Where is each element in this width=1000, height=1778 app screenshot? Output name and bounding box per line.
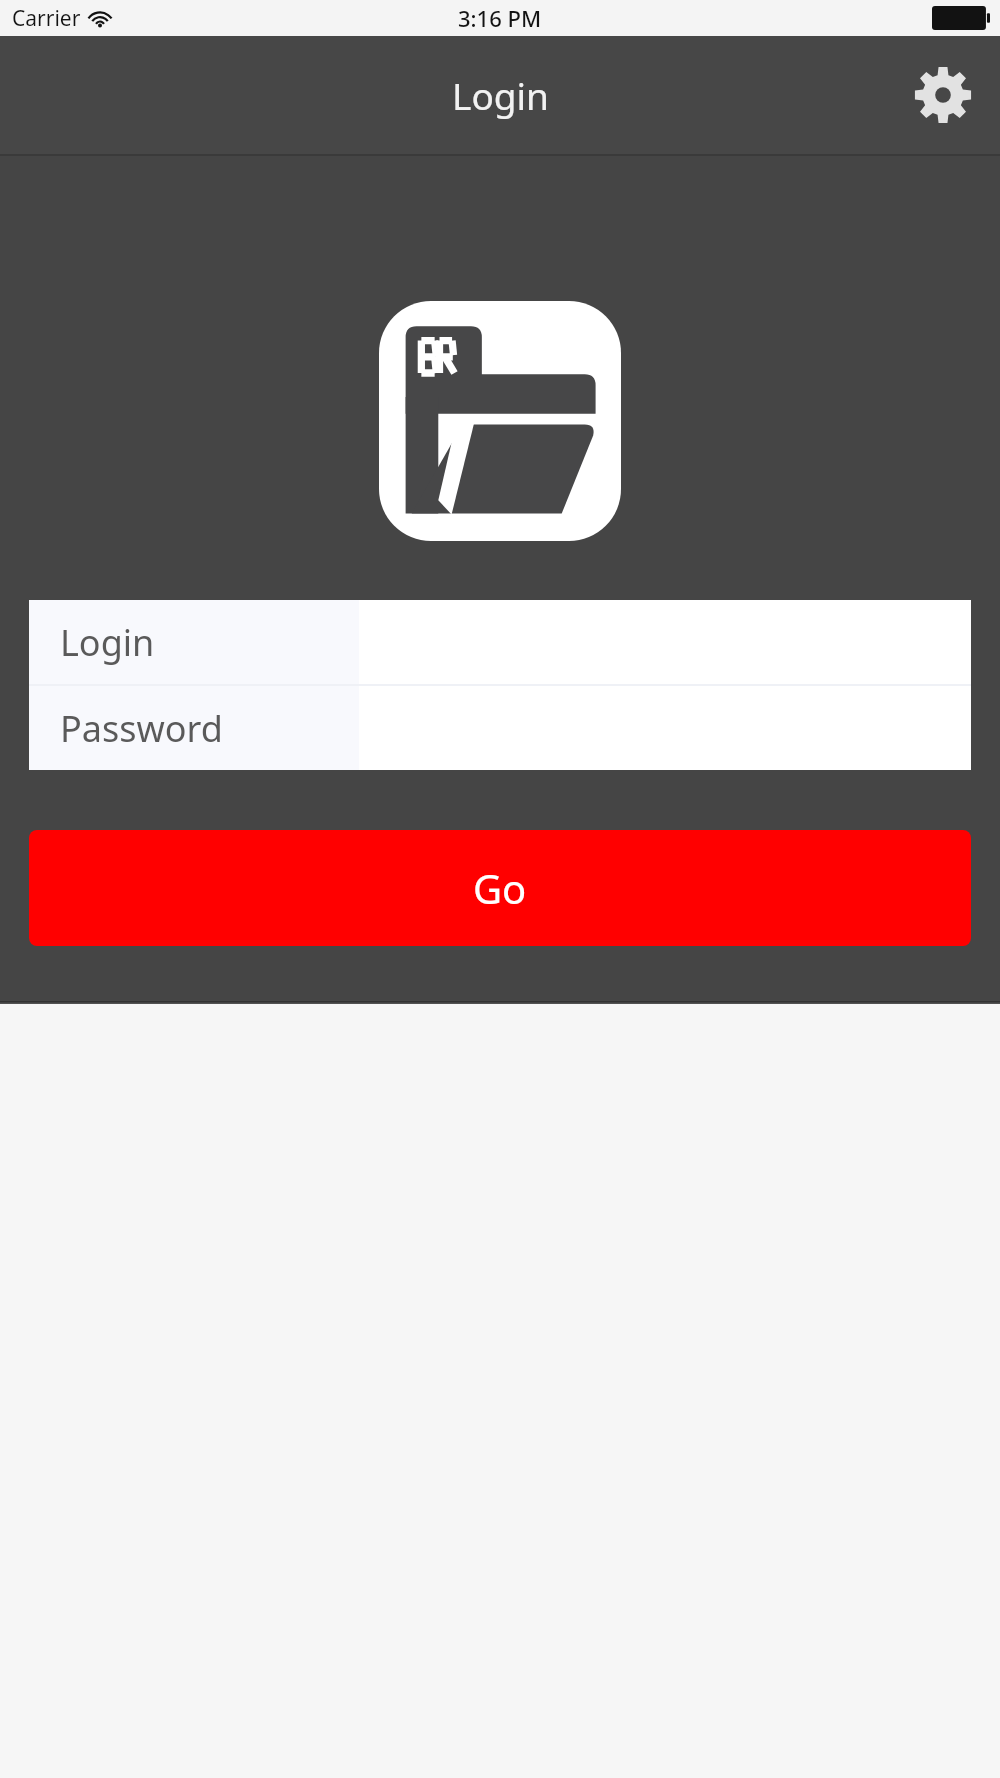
- staticText: Go: [473, 861, 527, 915]
- staticText: Password: [60, 704, 223, 753]
- staticText: 3:16 PM: [458, 3, 542, 33]
- button[interactable]: Login: [29, 600, 971, 684]
- button[interactable]: Go: [29, 830, 971, 946]
- button[interactable]: Settings: [910, 62, 976, 128]
- button[interactable]: Password: [29, 686, 971, 770]
- staticText: Login: [60, 618, 155, 667]
- staticText: Carrier: [12, 4, 81, 33]
- staticText: Login: [452, 70, 549, 120]
